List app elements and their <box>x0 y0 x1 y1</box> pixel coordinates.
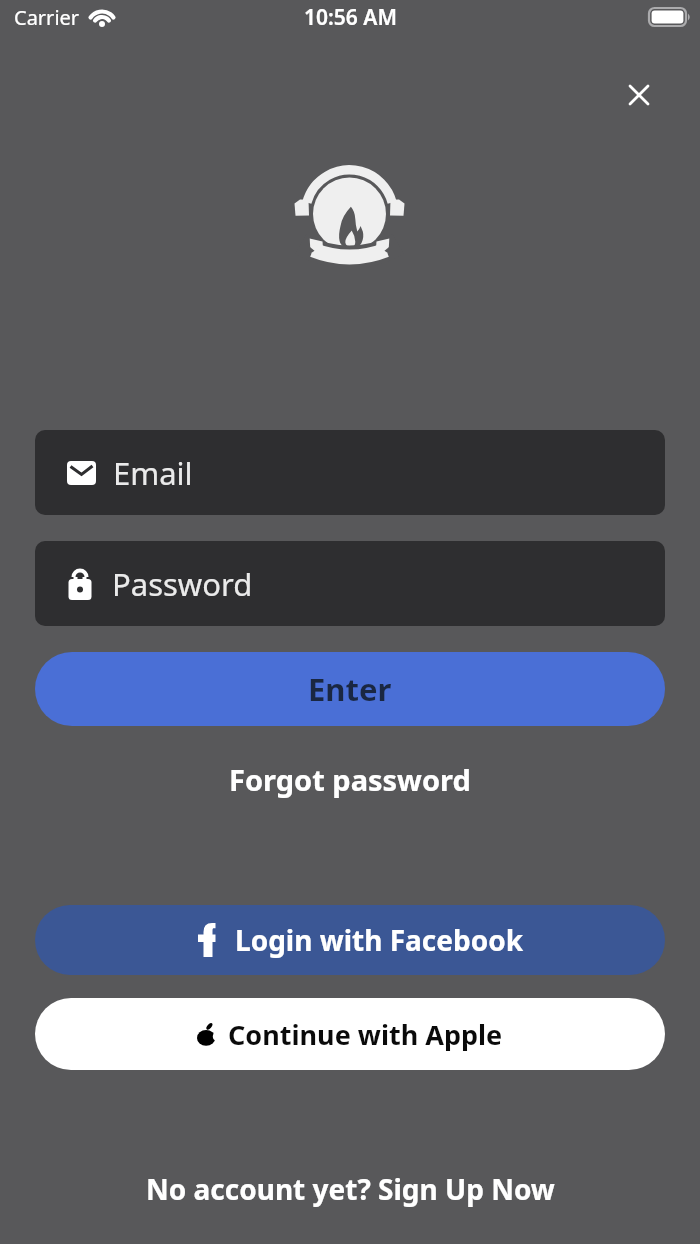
staticText: Continue with Apple <box>228 1016 503 1053</box>
staticText: No account yet? Sign Up Now <box>146 1170 555 1208</box>
button[interactable]: No account yet? Sign Up Now <box>0 1166 700 1212</box>
button[interactable] <box>616 72 662 118</box>
staticText: Forgot password <box>229 760 471 799</box>
button[interactable]: Login with Facebook <box>35 905 665 975</box>
staticText: Login with Facebook <box>235 921 524 959</box>
staticText: Enter <box>308 668 392 710</box>
button[interactable]: Enter <box>35 652 665 726</box>
button[interactable]: Email <box>35 430 665 515</box>
button[interactable]: Forgot password <box>0 758 700 800</box>
staticText: Email <box>113 452 193 494</box>
staticText: 10:56 AM <box>304 3 397 32</box>
button[interactable]: Continue with Apple <box>35 998 665 1070</box>
staticText: Carrier <box>14 4 80 31</box>
button[interactable]: Password <box>35 541 665 626</box>
staticText: Password <box>112 563 253 605</box>
